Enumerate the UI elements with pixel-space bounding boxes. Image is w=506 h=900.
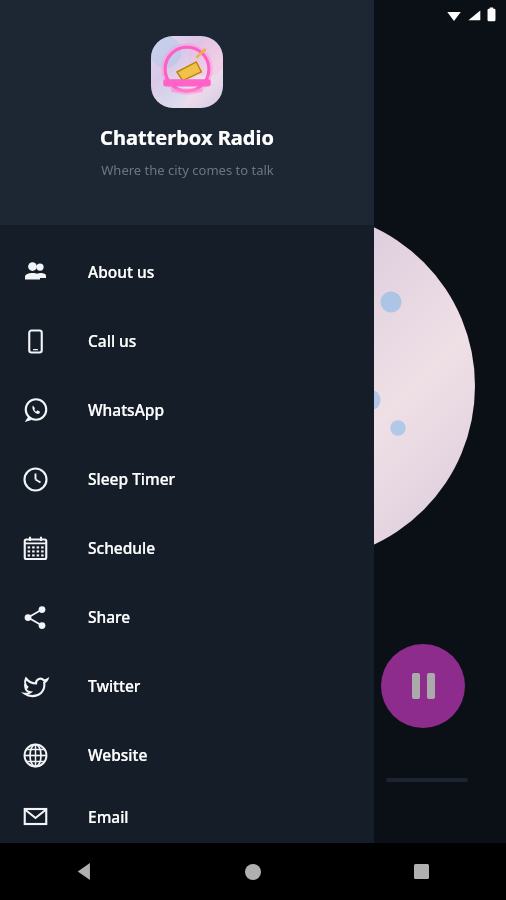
staticText: Where the city comes to talk [101,161,274,179]
button[interactable]: Twitter [0,651,374,720]
staticText: Sleep Timer [88,468,176,489]
staticText: Call us [88,330,137,351]
staticText: Website [88,744,148,765]
button[interactable]: Share [0,582,374,651]
staticText: About us [88,261,155,282]
button[interactable]: WhatsApp [0,375,374,444]
button[interactable]: Home [168,843,337,900]
button[interactable]: Pause [381,644,465,728]
button[interactable]: Back [0,843,168,900]
staticText: Chatterbox Radio [100,124,274,151]
button[interactable]: Call us [0,306,374,375]
staticText: Email [88,806,129,827]
staticText: Twitter [88,675,141,696]
staticText: Schedule [88,537,156,558]
button[interactable]: Recent apps [337,843,506,900]
button[interactable]: Schedule [0,513,374,582]
button[interactable]: About us [0,237,374,306]
button[interactable]: Email [0,789,374,843]
staticText: Share [88,606,131,627]
button[interactable]: Sleep Timer [0,444,374,513]
button[interactable]: Website [0,720,374,789]
staticText: WhatsApp [88,399,165,420]
